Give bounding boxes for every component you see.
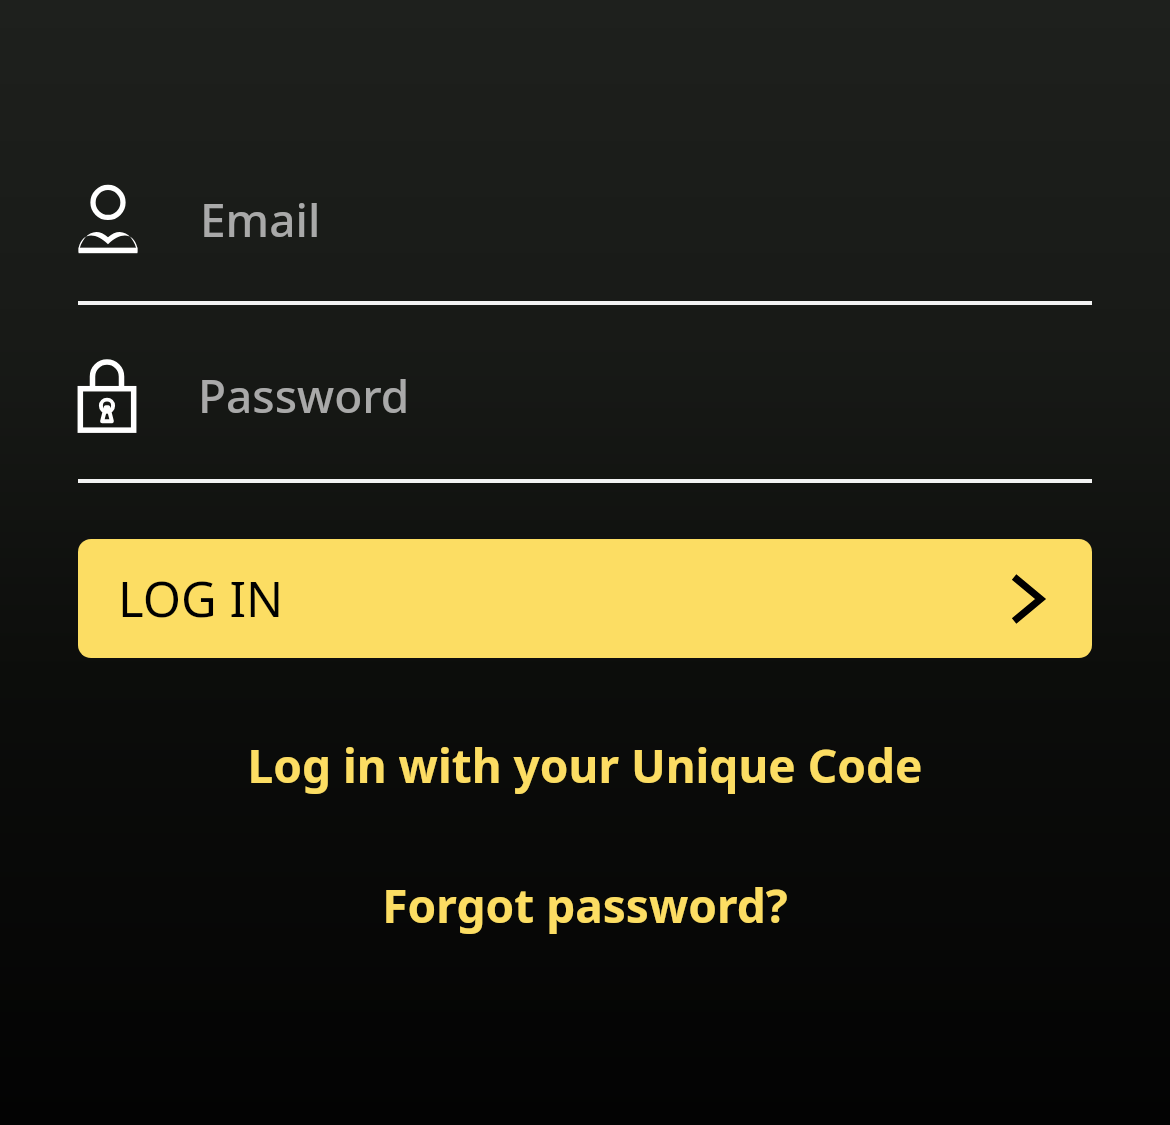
staticText: LOG IN bbox=[118, 565, 284, 632]
button[interactable]: Password bbox=[78, 353, 1092, 437]
staticText: Password bbox=[198, 364, 410, 427]
staticText: Log in with your Unique Code bbox=[247, 734, 923, 797]
button[interactable]: LOG IN bbox=[78, 539, 1092, 658]
staticText: Email bbox=[200, 188, 321, 251]
button[interactable]: Forgot password? bbox=[0, 874, 1170, 937]
other: Email bbox=[78, 183, 138, 255]
staticText: Forgot password? bbox=[382, 874, 788, 937]
other: Password bbox=[78, 358, 136, 432]
button[interactable]: Log in with your Unique Code bbox=[0, 734, 1170, 797]
button[interactable]: Email bbox=[78, 178, 1092, 260]
